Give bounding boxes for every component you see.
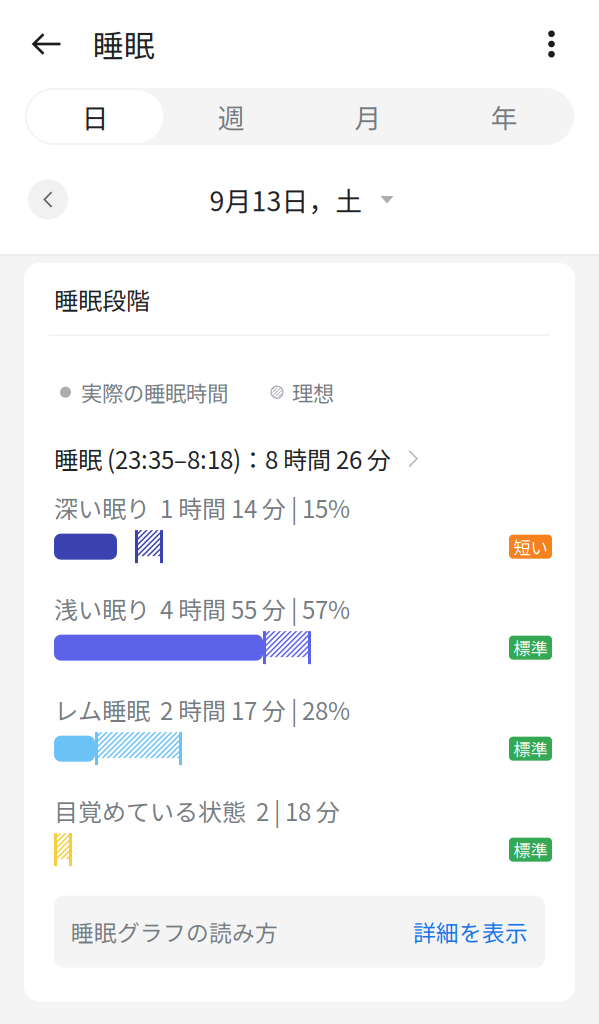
button[interactable]: 日 [27,90,163,143]
staticText: 標準 [513,635,547,660]
button[interactable]: 短い [509,535,552,559]
button[interactable]: Previous day [28,179,68,219]
staticText: 標準 [513,837,547,862]
staticText: 標準 [513,736,547,761]
staticText: 浅い眠り [54,591,150,626]
staticText: 睡眠グラフの読み方 [71,915,278,948]
staticText: 理想 [292,377,334,408]
staticText: 1 時間 14 分 | 15% [150,490,350,525]
staticText: 日 [82,97,109,136]
staticText: 深い眠り [54,490,150,525]
staticText: 短い [513,534,547,559]
staticText: 目覚めている状態 [54,793,246,828]
staticText: 月 [354,97,381,136]
button[interactable]: 月 [299,90,436,143]
staticText: 2 時間 17 分 | 28% [150,692,350,727]
button[interactable]: 年 [436,90,572,143]
staticText: 9月13日，土 [209,180,362,219]
button[interactable]: 睡眠グラフの読み方 [54,896,545,968]
button[interactable]: Back [0,0,93,90]
staticText: 2 | 18 分 [246,793,340,828]
button[interactable]: 標準 [509,737,552,761]
staticText: 睡眠 (23:35–8:18)：8 時間 26 分 [54,441,391,476]
staticText: 4 時間 55 分 | 57% [150,591,350,626]
staticText: 睡眠 [93,22,155,66]
staticText: レム睡眠 [54,692,150,727]
button[interactable]: 標準 [509,636,552,660]
staticText: 睡眠段階 [54,282,150,317]
button[interactable]: 標準 [509,838,552,862]
staticText: 詳細を表示 [413,915,528,948]
button[interactable]: 週 [163,90,299,143]
staticText: 年 [490,97,517,136]
button[interactable]: More options [548,0,599,90]
button[interactable]: 睡眠 (23:35–8:18)：8 時間 26 分 [24,444,575,474]
button[interactable]: 9月13日，土 [209,180,393,219]
staticText: 実際の睡眠時間 [81,377,228,408]
staticText: 週 [218,97,245,136]
